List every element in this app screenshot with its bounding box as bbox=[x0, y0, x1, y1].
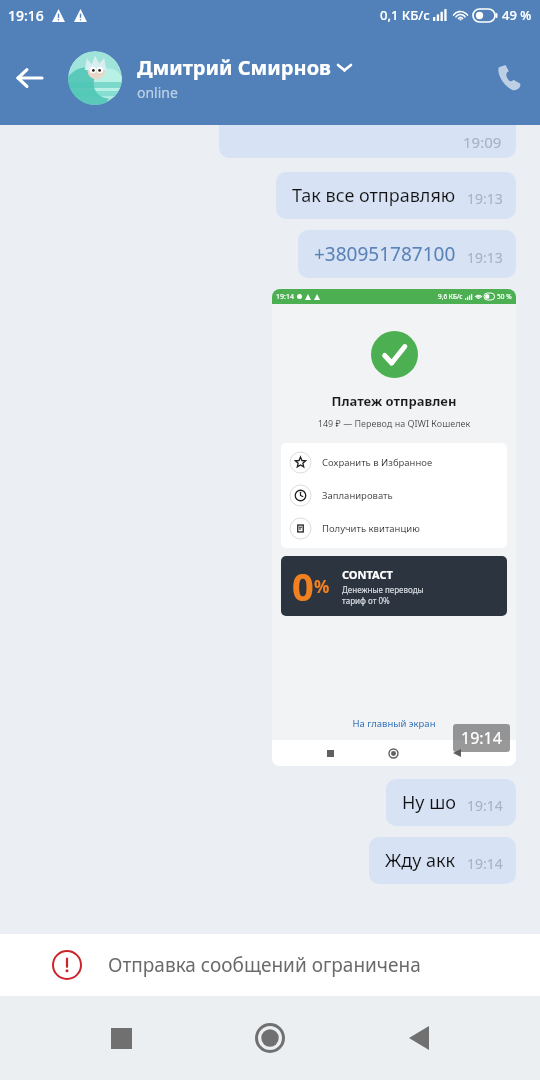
staticText: Дмитрий Смирнов bbox=[137, 54, 331, 81]
button[interactable]: Ну шо bbox=[386, 779, 516, 826]
button[interactable]: Запланировать bbox=[281, 485, 507, 506]
button[interactable]: 0 bbox=[281, 556, 507, 616]
staticText: 0 bbox=[292, 560, 314, 612]
button[interactable]: +380951787100 bbox=[298, 230, 516, 278]
button[interactable]: Жду акк bbox=[369, 837, 516, 884]
staticText: Запланировать bbox=[322, 489, 393, 502]
button[interactable] bbox=[68, 51, 122, 105]
staticText: Отправка сообщений ограничена bbox=[108, 952, 421, 978]
button[interactable]: Так все отправляю bbox=[276, 172, 516, 219]
staticText: 19:13 bbox=[467, 248, 503, 267]
button[interactable]: Отправка сообщений ограничена bbox=[0, 934, 540, 996]
button[interactable]: Позвонить bbox=[480, 48, 540, 108]
staticText: % bbox=[314, 575, 330, 598]
staticText: Денежные переводы bbox=[342, 584, 424, 595]
button[interactable]: Дмитрий Смирнов bbox=[137, 54, 480, 102]
staticText: 49 % bbox=[502, 6, 532, 24]
button[interactable]: На главный экран bbox=[272, 717, 516, 730]
staticText: +380951787100 bbox=[314, 241, 456, 267]
staticText: Так все отправляю bbox=[292, 183, 456, 208]
button[interactable]: Сохранить в Избранное bbox=[281, 452, 507, 473]
staticText: 19:14 bbox=[467, 796, 503, 815]
button[interactable]: Скриншот платежа bbox=[272, 289, 516, 766]
staticText: Получить квитанцию bbox=[322, 522, 420, 535]
staticText: 0,1 КБ/c bbox=[380, 6, 430, 24]
staticText: Ну шо bbox=[402, 790, 456, 815]
staticText: 19:14 bbox=[467, 854, 503, 873]
button[interactable]: Получить квитанцию bbox=[281, 518, 507, 539]
staticText: 149 ₽ — Перевод на QIWI Кошелек bbox=[272, 417, 516, 429]
staticText: online bbox=[137, 83, 178, 102]
staticText: 9,6 КБ/c bbox=[438, 292, 463, 301]
staticText: 19:14 bbox=[461, 727, 502, 749]
staticText: 19:16 bbox=[8, 6, 44, 25]
button[interactable]: Назад bbox=[0, 49, 58, 107]
staticText: CONTACT bbox=[342, 567, 393, 582]
button[interactable]: Домой bbox=[242, 1010, 298, 1066]
staticText: 19:09 bbox=[463, 132, 502, 152]
staticText: 19:14 bbox=[276, 292, 294, 302]
button[interactable]: Последние приложения bbox=[93, 1010, 149, 1066]
staticText: тариф от 0% bbox=[342, 595, 390, 606]
button[interactable]: 19:09 bbox=[219, 125, 516, 158]
staticText: 19:13 bbox=[467, 189, 503, 208]
staticText: 50 % bbox=[497, 292, 512, 301]
button[interactable]: Назад bbox=[391, 1010, 447, 1066]
staticText: Сохранить в Избранное bbox=[322, 456, 433, 469]
staticText: Жду акк bbox=[385, 848, 456, 873]
staticText: Платеж отправлен bbox=[272, 392, 516, 410]
